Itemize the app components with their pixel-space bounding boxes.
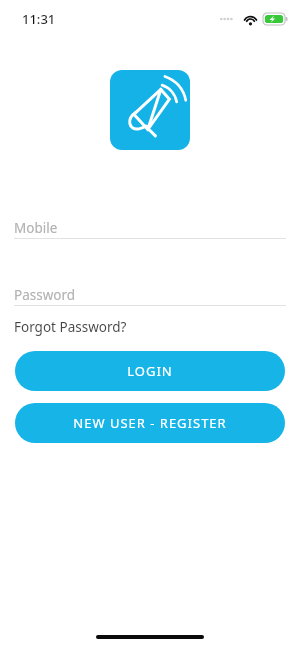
button[interactable]: NEW USER - REGISTER (15, 403, 285, 443)
button[interactable]: Forgot Password? (14, 317, 127, 337)
button[interactable]: Password (14, 283, 286, 307)
staticText: 11:31 (22, 10, 56, 28)
button[interactable]: Mobile (14, 216, 286, 240)
staticText: NEW USER - REGISTER (73, 414, 227, 432)
staticText: Mobile (14, 219, 58, 237)
staticText: Forgot Password? (14, 318, 127, 336)
other: App logo (123, 83, 177, 137)
button[interactable]: LOGIN (15, 351, 285, 391)
staticText: LOGIN (127, 362, 173, 380)
staticText: Password (14, 286, 76, 304)
